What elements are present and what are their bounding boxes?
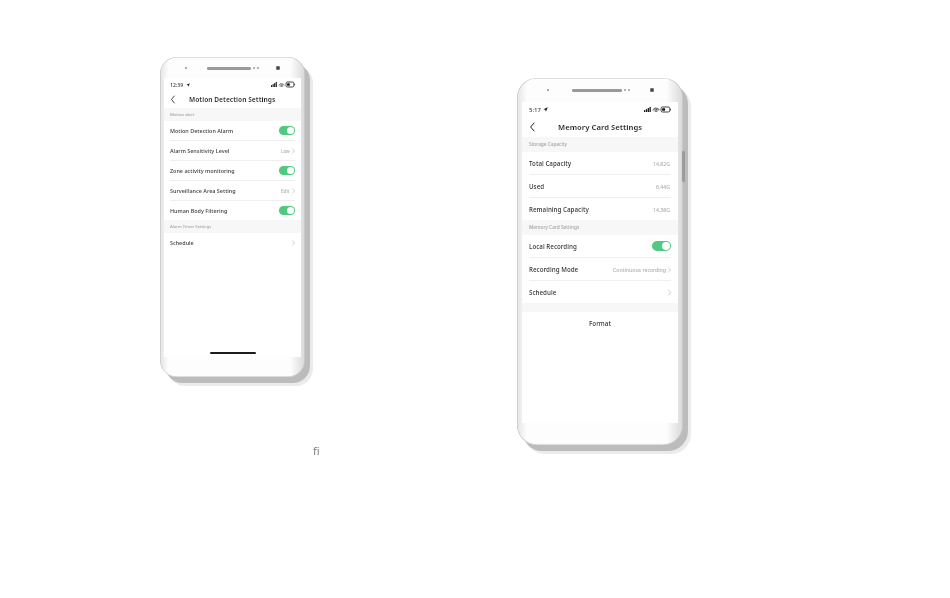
button[interactable]: Format <box>522 312 678 333</box>
staticText: Alarm Sensitivity Level <box>170 147 230 154</box>
staticText: 6.44G <box>656 183 671 190</box>
button[interactable]: Total Capacity <box>522 152 678 174</box>
button[interactable]: Surveillance Area Setting <box>164 181 301 200</box>
staticText: Motion alert <box>170 112 195 118</box>
button[interactable]: Alarm Sensitivity Level <box>164 141 301 160</box>
button[interactable]: Schedule <box>522 281 678 303</box>
button[interactable]: Toggle on <box>279 126 295 135</box>
staticText: Zone activity monitoring <box>170 167 235 174</box>
button[interactable]: Toggle on <box>279 166 295 175</box>
staticText: Used <box>529 182 545 190</box>
staticText: Storage Capacity <box>529 141 567 148</box>
button[interactable]: Schedule <box>164 233 301 252</box>
staticText: Motion Detection Settings <box>189 95 276 104</box>
button[interactable]: Used <box>522 175 678 197</box>
staticText: 14.82G <box>653 160 671 167</box>
staticText: Alarm Timer Settings <box>170 224 212 230</box>
staticText: Total Capacity <box>529 159 572 167</box>
staticText: Continuous recording <box>613 266 666 273</box>
button[interactable]: Local Recording <box>522 235 678 257</box>
staticText: Memory Card Settings <box>529 224 580 231</box>
staticText: Surveillance Area Setting <box>170 187 236 194</box>
staticText: 5:17 <box>529 106 541 114</box>
button[interactable]: Remaining Capacity <box>522 198 678 220</box>
button[interactable]: Motion Detection Alarm <box>164 121 301 140</box>
staticText: Local Recording <box>529 242 577 250</box>
button[interactable]: Toggle on <box>279 206 295 215</box>
button[interactable]: Back <box>164 91 181 108</box>
staticText: Remaining Capacity <box>529 205 589 213</box>
button[interactable]: Back <box>522 117 542 137</box>
button[interactable]: Zone activity monitoring <box>164 161 301 180</box>
staticText: Schedule <box>529 288 557 296</box>
button[interactable]: Human Body Filtering <box>164 201 301 220</box>
staticText: Edit <box>281 188 290 194</box>
staticText: Schedule <box>170 239 194 246</box>
staticText: Recording Mode <box>529 265 579 273</box>
staticText: fi <box>313 443 320 458</box>
button[interactable]: Toggle on <box>652 241 671 251</box>
staticText: 12:39 <box>170 81 184 88</box>
staticText: Format <box>589 319 611 327</box>
staticText: 14.38G <box>653 206 671 213</box>
staticText: Low <box>281 148 290 154</box>
button[interactable]: Recording Mode <box>522 258 678 280</box>
staticText: Memory Card Settings <box>558 122 643 132</box>
staticText: Motion Detection Alarm <box>170 127 234 134</box>
staticText: Human Body Filtering <box>170 207 228 214</box>
